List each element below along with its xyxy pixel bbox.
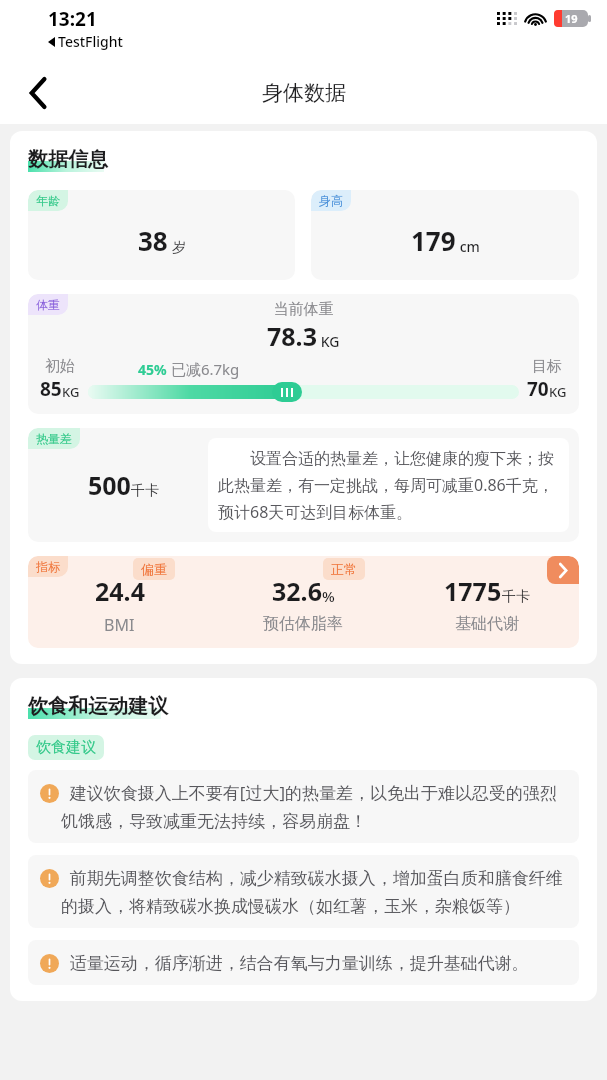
staticText: 19 xyxy=(565,11,578,26)
staticText: 78.3 xyxy=(267,319,317,353)
staticText: 目标 xyxy=(532,357,562,376)
button[interactable]: Back xyxy=(16,71,60,115)
staticText: 岁 xyxy=(168,237,186,256)
staticText: 13:21 xyxy=(48,6,97,32)
staticText: 体重 xyxy=(36,297,60,312)
staticText: 热量差 xyxy=(36,431,72,446)
button[interactable]: 体重 xyxy=(28,294,579,414)
button[interactable]: 热量差 xyxy=(28,428,579,542)
staticText: 身高 xyxy=(319,193,343,208)
staticText: 24.4 xyxy=(95,574,145,608)
staticText: 适量运动，循序渐进，结合有氧与力量训练，提升基础代谢。 xyxy=(61,951,529,974)
staticText: 饮食建议 xyxy=(36,738,96,757)
staticText: 500 xyxy=(88,468,131,502)
staticText: % xyxy=(322,586,335,606)
staticText: 38 xyxy=(138,223,168,258)
staticText: 数据信息 xyxy=(28,147,108,172)
staticText: 身体数据 xyxy=(262,80,346,106)
button[interactable]: 年龄 xyxy=(28,190,295,280)
staticText: KG xyxy=(549,383,567,401)
button[interactable]: 指标 xyxy=(28,556,579,648)
button[interactable]: More metrics xyxy=(547,556,579,584)
staticText: 前期先调整饮食结构，减少精致碳水摄入，增加蛋白质和膳食纤维的摄入，将精致碳水换成… xyxy=(61,866,567,917)
staticText: 千卡 xyxy=(502,588,530,606)
staticText: 70 xyxy=(527,376,549,402)
staticText: KG xyxy=(62,383,80,401)
staticText: 饮食和运动建议 xyxy=(28,694,168,719)
staticText: 1775 xyxy=(444,574,502,608)
staticText: KG xyxy=(317,332,340,351)
staticText: 年龄 xyxy=(36,193,60,208)
staticText: 建议饮食摄入上不要有[过大]的热量差，以免出于难以忍受的强烈饥饿感，导致减重无法… xyxy=(61,781,567,832)
staticText: 偏重 xyxy=(141,561,167,577)
staticText: 45% xyxy=(138,360,167,379)
button[interactable]: 身高 xyxy=(311,190,579,280)
staticText: 当前体重 xyxy=(28,300,579,319)
staticText: 设置合适的热量差，让您健康的瘦下来；按此热量差，有一定挑战，每周可减重0.86千… xyxy=(218,447,559,523)
staticText: 已减6.7kg xyxy=(167,359,240,379)
staticText: 预估体脂率 xyxy=(263,614,343,634)
staticText: 85 xyxy=(40,376,62,402)
staticText: TestFlight xyxy=(58,32,123,51)
staticText: 指标 xyxy=(36,559,60,574)
staticText: 正常 xyxy=(331,561,357,577)
staticText: 千卡 xyxy=(131,482,159,500)
staticText: 初始 xyxy=(45,357,75,376)
staticText: BMI xyxy=(104,614,135,636)
staticText: cm xyxy=(456,237,480,256)
staticText: 179 xyxy=(411,223,456,258)
staticText: 32.6 xyxy=(272,574,322,608)
staticText: 基础代谢 xyxy=(455,614,519,634)
